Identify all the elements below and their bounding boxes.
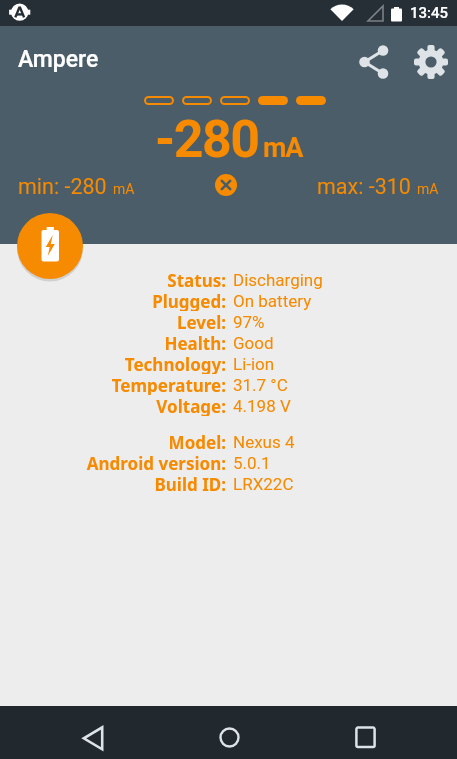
staticText: Ampere (18, 46, 99, 73)
staticText: mA (417, 181, 439, 197)
staticText: Technology: (124, 353, 226, 374)
staticText: mA (113, 181, 135, 197)
button[interactable] (17, 213, 83, 279)
staticText: Status: (167, 269, 226, 290)
button[interactable] (355, 42, 395, 82)
staticText: Build ID: (154, 473, 226, 494)
staticText: 31.7 °C (233, 375, 288, 395)
staticText: 97% (233, 312, 265, 332)
staticText: Model: (168, 431, 226, 452)
staticText: 5.0.1 (233, 453, 271, 473)
staticText: Health: (164, 332, 226, 353)
staticText: On battery (233, 291, 312, 311)
staticText: Voltage: (156, 395, 226, 416)
staticText: Nexus 4 (233, 432, 295, 452)
button[interactable] (58, 706, 128, 759)
staticText: Plugged: (152, 290, 226, 311)
button[interactable] (215, 174, 237, 196)
staticText: mA (263, 132, 303, 164)
staticText: Level: (176, 311, 226, 332)
staticText: max: -310 (317, 174, 417, 199)
staticText: Li-ion (233, 354, 275, 374)
staticText: -280 (155, 109, 259, 170)
staticText: 4.198 V (233, 396, 291, 416)
staticText: LRX22C (233, 474, 294, 494)
button[interactable] (330, 706, 400, 759)
staticText: Discharging (233, 270, 323, 290)
staticText: 13:45 (410, 4, 449, 22)
staticText: Temperature: (111, 374, 226, 395)
button[interactable] (411, 42, 451, 82)
staticText: min: -280 (18, 174, 113, 199)
staticText: Good (233, 333, 274, 353)
staticText: Android version: (86, 452, 226, 473)
button[interactable] (194, 706, 264, 759)
